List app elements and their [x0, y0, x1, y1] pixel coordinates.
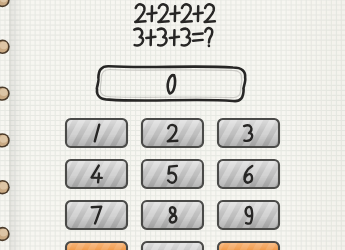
button[interactable]: Key 0: [0, 0, 345, 250]
button[interactable]: Key 4: [0, 0, 345, 250]
button[interactable]: Submit: [0, 0, 345, 250]
button[interactable]: Clear: [0, 0, 345, 250]
button[interactable]: Key 6: [0, 0, 345, 250]
button[interactable]: Key 9: [0, 0, 345, 250]
button[interactable]: Key 3: [0, 0, 345, 250]
button[interactable]: Key 7: [0, 0, 345, 250]
button[interactable]: Key 2: [0, 0, 345, 250]
button[interactable]: Key 5: [0, 0, 345, 250]
button[interactable]: Key 8: [0, 0, 345, 250]
button[interactable]: Key 1: [0, 0, 345, 250]
button[interactable]: Answer display, 0: [0, 0, 345, 250]
